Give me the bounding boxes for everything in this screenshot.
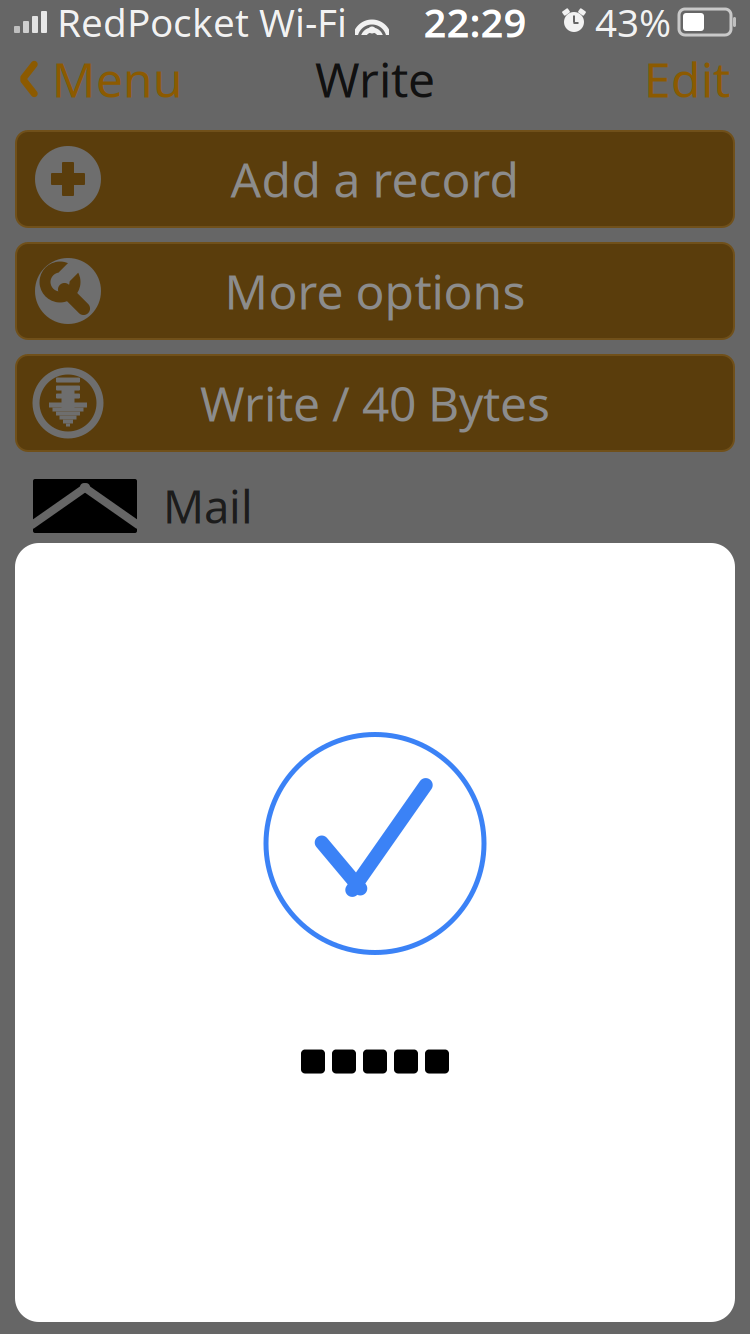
staticText: 43% [595, 0, 671, 48]
staticText: More options [224, 259, 525, 323]
button[interactable]: Write / 40 Bytes [16, 355, 734, 451]
staticText: Write / 40 Bytes [200, 371, 550, 435]
staticText: Mail [163, 476, 253, 536]
button[interactable]: Add a record [16, 131, 734, 227]
staticText: Menu [52, 47, 183, 111]
staticText: Write [315, 47, 435, 111]
button[interactable]: Edit [624, 48, 750, 110]
button[interactable]: Menu [0, 48, 201, 110]
button[interactable]: More options [16, 243, 734, 339]
staticText: RedPocket Wi-Fi [57, 0, 347, 48]
staticText: 22:29 [423, 0, 526, 48]
staticText: Add a record [230, 147, 519, 211]
staticText: Edit [644, 47, 730, 111]
